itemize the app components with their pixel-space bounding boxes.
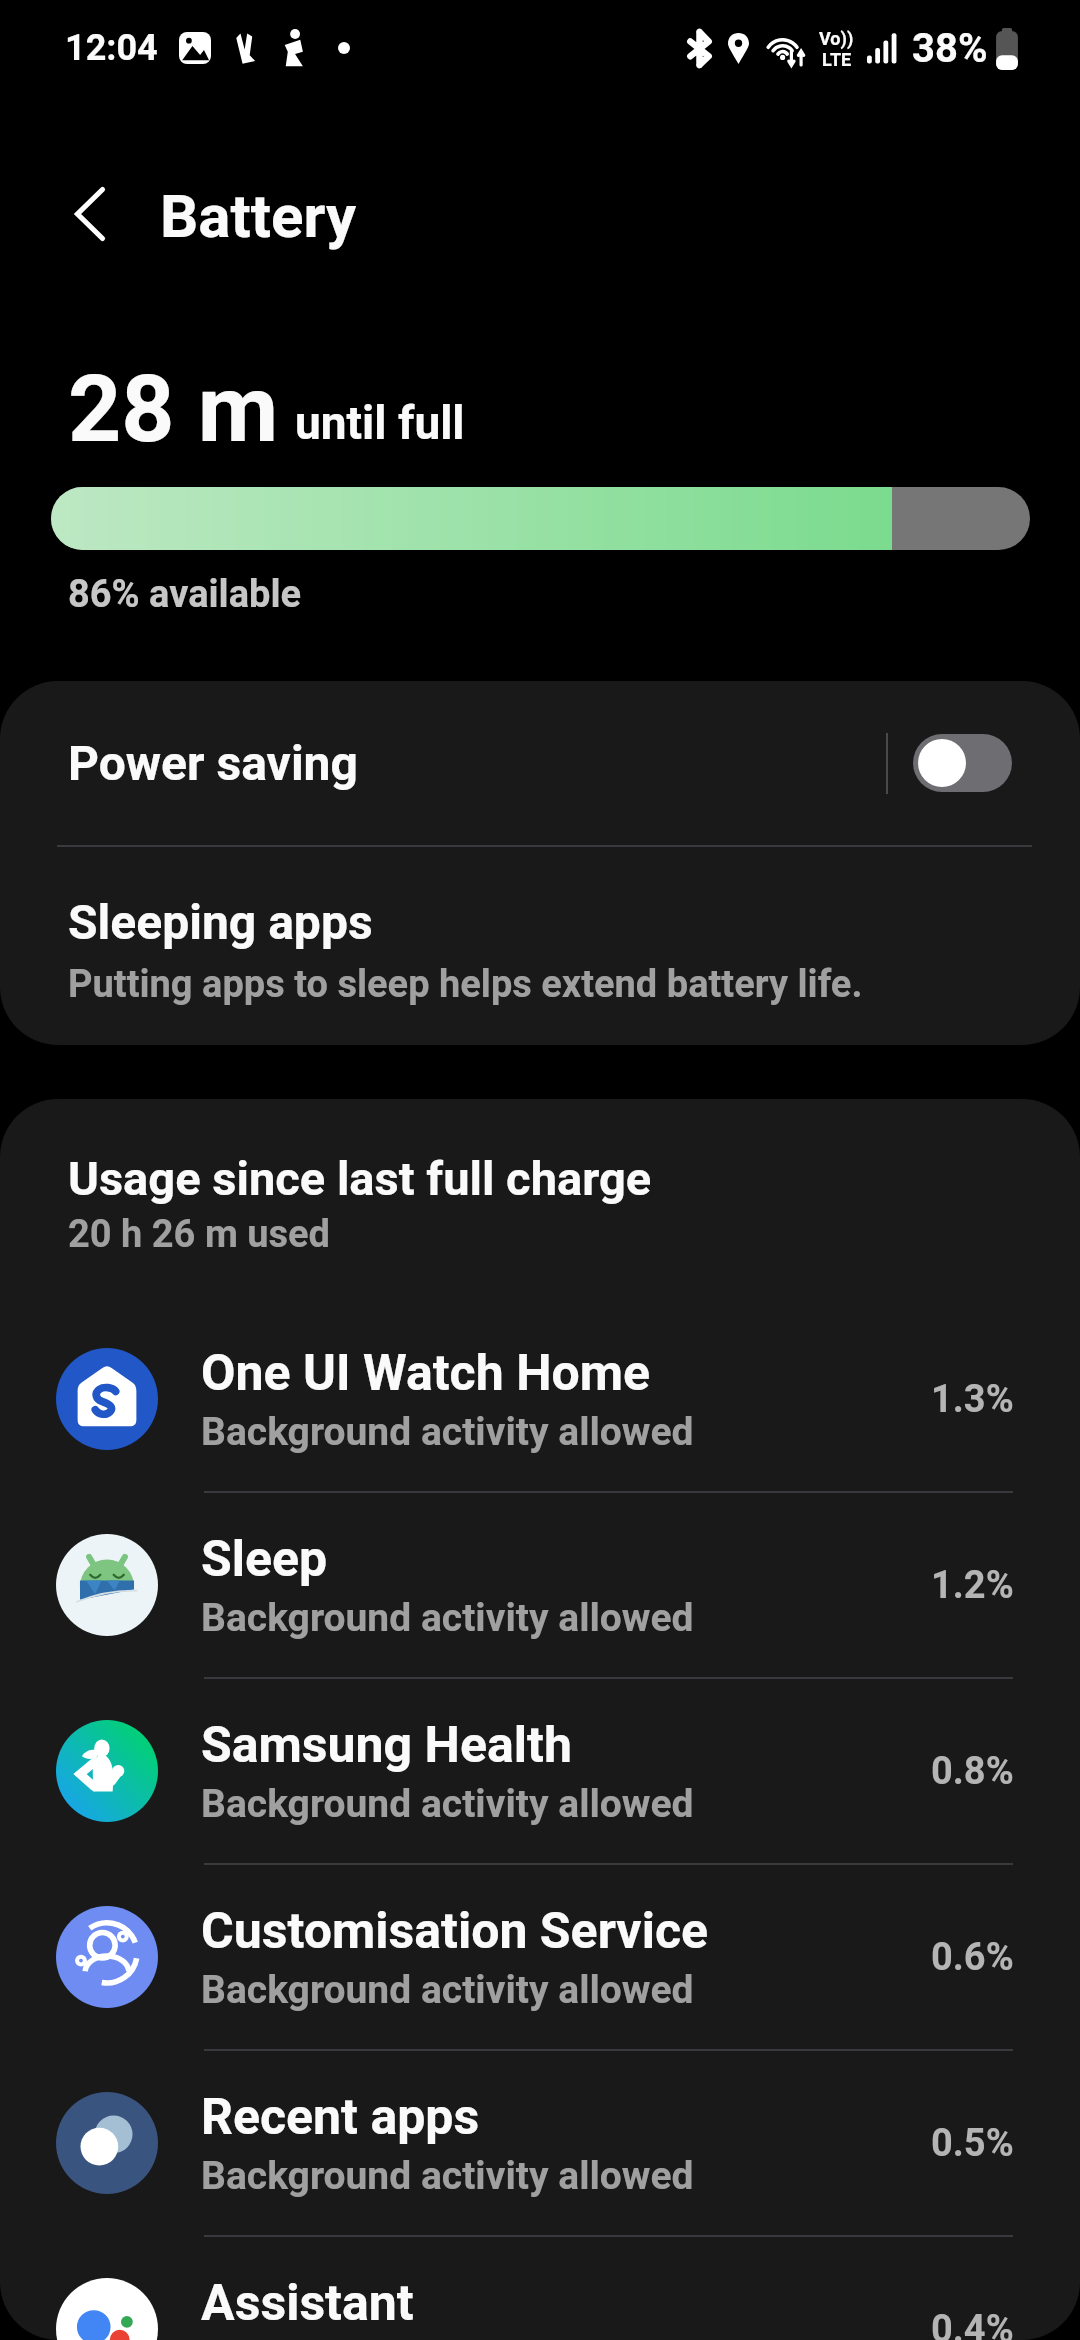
staticText: Background activity allowed — [201, 1967, 694, 2013]
button[interactable]: Assistant — [0, 2237, 1080, 2340]
staticText: Sleeping apps — [68, 894, 373, 950]
button[interactable]: Sleep — [0, 1493, 1080, 1677]
staticText: 1.3% — [931, 1377, 1014, 1422]
staticText: Background activity allowed — [201, 2153, 694, 2199]
staticText: Power saving — [68, 735, 886, 791]
button[interactable]: Samsung Health — [0, 1679, 1080, 1863]
staticText: 12:04 — [65, 27, 158, 69]
staticText: 38% — [912, 25, 988, 72]
staticText: Background activity allowed — [201, 1595, 694, 1641]
staticText: Vo)) — [819, 28, 854, 49]
button[interactable]: Customisation Service — [0, 1865, 1080, 2049]
staticText: 0.6% — [931, 1935, 1014, 1980]
button[interactable]: One UI Watch Home — [0, 1307, 1080, 1491]
staticText: 0.8% — [931, 1749, 1014, 1794]
staticText: until full — [295, 396, 465, 450]
button[interactable]: Back — [48, 172, 132, 256]
staticText: 1.2% — [931, 1563, 1014, 1608]
staticText: Background activity allowed — [201, 1409, 694, 1455]
button[interactable]: Sleeping apps — [0, 847, 1080, 1045]
staticText: Putting apps to sleep helps extend batte… — [68, 962, 863, 1007]
staticText: One UI Watch Home — [201, 1344, 651, 1403]
staticText: 86% available — [68, 572, 302, 617]
staticText: Sleep — [201, 1530, 328, 1589]
staticText: 28 m — [68, 355, 279, 464]
staticText: Assistant — [201, 2274, 414, 2333]
staticText: Battery — [160, 181, 357, 251]
staticText: LTE — [822, 49, 852, 70]
staticText: Samsung Health — [201, 1716, 572, 1775]
staticText: 20 h 26 m used — [68, 1212, 331, 1257]
staticText: Customisation Service — [201, 1902, 709, 1961]
staticText: 0.5% — [931, 2121, 1014, 2166]
staticText: Usage since last full charge — [68, 1151, 652, 1206]
staticText: 0.4% — [931, 2307, 1014, 2340]
staticText: Recent apps — [201, 2088, 480, 2147]
button[interactable]: Power saving toggle — [913, 734, 1012, 792]
button[interactable]: Recent apps — [0, 2051, 1080, 2235]
button[interactable]: Power saving — [0, 681, 1080, 845]
staticText: Background activity allowed — [201, 1781, 694, 1827]
